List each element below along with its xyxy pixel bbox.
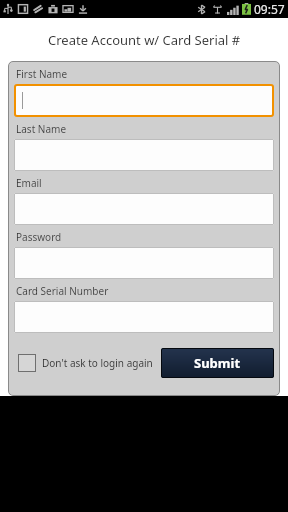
staticText: Email (16, 176, 42, 190)
staticText: Password (16, 230, 62, 244)
button[interactable] (14, 139, 274, 171)
staticText: Last Name (16, 122, 67, 136)
button[interactable] (16, 86, 272, 115)
button[interactable] (14, 301, 274, 333)
staticText: Create Account w/ Card Serial # (48, 31, 241, 49)
button[interactable]: Submit (161, 348, 274, 378)
staticText: 09:57 (254, 1, 285, 17)
staticText: First Name (16, 67, 68, 81)
button[interactable] (14, 193, 274, 225)
staticText: Submit (194, 354, 241, 372)
button[interactable]: Don't ask to login again (14, 352, 157, 374)
staticText: Don't ask to login again (42, 356, 153, 370)
staticText: Card Serial Number (16, 284, 109, 298)
button[interactable] (14, 247, 274, 279)
